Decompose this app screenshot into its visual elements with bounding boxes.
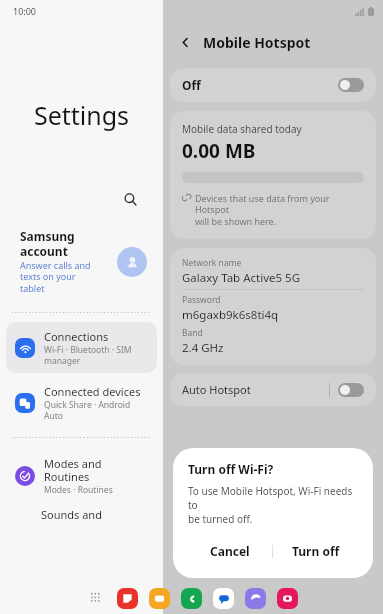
button[interactable]: Off [170, 68, 376, 102]
staticText: Modes · Routines [44, 484, 113, 496]
staticText: To use Mobile Hotspot, Wi-Fi needs to be… [188, 484, 358, 526]
button[interactable]: App [181, 588, 202, 609]
button[interactable]: Cancel [188, 537, 272, 565]
button[interactable]: App [213, 588, 234, 609]
staticText: Answer calls and texts on your tablet [20, 259, 91, 295]
staticText: Network name [182, 257, 242, 269]
button[interactable]: App [149, 588, 170, 609]
staticText: Modes and Routines [44, 456, 102, 484]
button[interactable]: App [245, 588, 266, 609]
staticText: Sounds and [41, 507, 102, 522]
staticText: Turn off Wi-Fi? [188, 461, 274, 477]
staticText: Band [182, 327, 203, 339]
staticText: Cancel [210, 543, 250, 559]
button[interactable]: Auto Hotspot [170, 373, 376, 406]
staticText: Turn off [292, 543, 340, 559]
button[interactable]: Samsung account [117, 247, 147, 277]
button[interactable]: Toggle [338, 383, 364, 397]
staticText: Password [182, 294, 221, 306]
staticText: 10:00 [13, 5, 37, 17]
button[interactable]: App [277, 588, 298, 609]
staticText: m6gaxb9k6s8ti4q [182, 307, 279, 323]
staticText: Auto Hotspot [182, 382, 251, 397]
button[interactable]: Connections [6, 322, 157, 373]
button[interactable]: Modes and Routines [6, 449, 157, 503]
button[interactable]: Connected devices [6, 377, 157, 428]
button[interactable]: Turn off [273, 537, 358, 565]
staticText: Wi-Fi · Bluetooth · SIM manager [44, 344, 132, 366]
button[interactable]: All apps [86, 588, 106, 608]
staticText: 2.4 GHz [182, 340, 224, 356]
staticText: Galaxy Tab Active5 5G [182, 270, 301, 286]
staticText: Quick Share · Android Auto [44, 399, 131, 421]
staticText: Mobile data shared today [182, 122, 302, 136]
button[interactable]: Toggle [338, 78, 364, 92]
staticText: Samsung account [20, 228, 75, 259]
button[interactable]: Samsung account [0, 228, 163, 295]
staticText: 0.00 MB [182, 138, 256, 164]
staticText: Connections [44, 329, 109, 344]
button[interactable]: App [117, 588, 138, 609]
staticText: Devices that use data from your Hotspot … [195, 192, 364, 228]
button[interactable]: Search [117, 186, 143, 212]
staticText: Settings [0, 98, 163, 132]
staticText: Connected devices [44, 384, 141, 399]
staticText: Off [182, 77, 201, 93]
button[interactable]: Back [175, 32, 195, 52]
staticText: Mobile Hotspot [203, 33, 311, 52]
